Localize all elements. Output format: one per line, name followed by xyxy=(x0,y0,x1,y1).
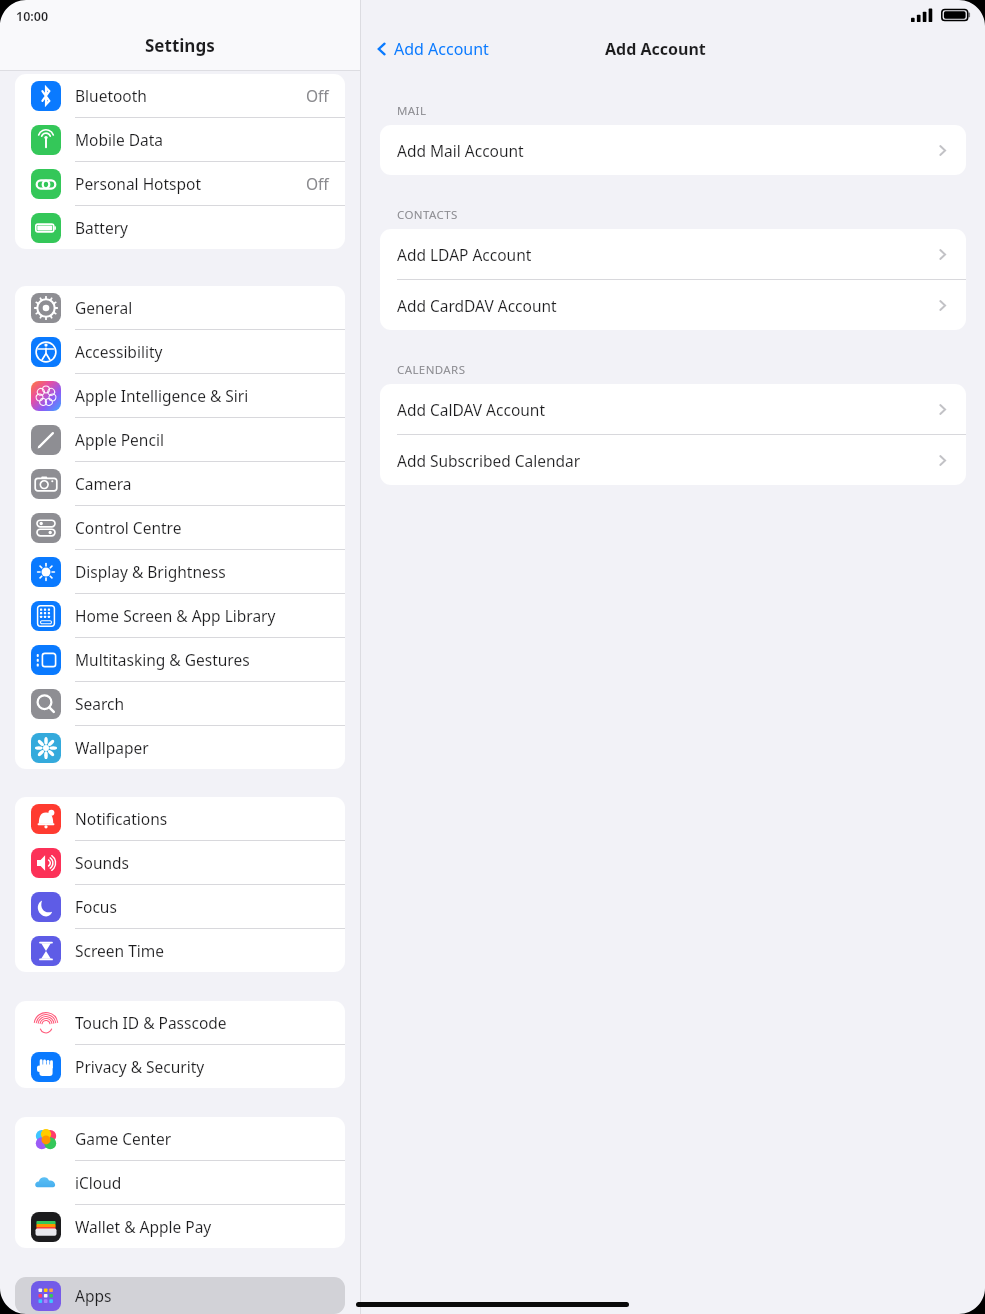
staticText: Camera xyxy=(75,473,132,494)
button[interactable]: Battery xyxy=(15,206,345,249)
button[interactable]: Bluetooth xyxy=(15,74,345,118)
button[interactable]: Add Subscribed Calendar xyxy=(380,435,966,485)
staticText: iCloud xyxy=(75,1172,122,1193)
staticText: MAIL xyxy=(397,103,427,119)
staticText: Search xyxy=(75,693,125,714)
button[interactable]: Focus xyxy=(15,885,345,929)
staticText: Off xyxy=(306,173,329,194)
button[interactable]: Apple Pencil xyxy=(15,418,345,462)
staticText: Apple Pencil xyxy=(75,429,164,450)
staticText: Screen Time xyxy=(75,940,164,961)
staticText: General xyxy=(75,297,133,318)
staticText: Focus xyxy=(75,896,117,917)
staticText: Battery xyxy=(75,217,129,238)
button[interactable]: Display & Brightness xyxy=(15,550,345,594)
staticText: Apps xyxy=(75,1285,112,1306)
staticText: Notifications xyxy=(75,808,168,829)
button[interactable]: Control Centre xyxy=(15,506,345,550)
button[interactable]: General xyxy=(15,286,345,330)
staticText: Personal Hotspot xyxy=(75,173,202,194)
staticText: Add Account xyxy=(394,38,489,60)
staticText: Home Screen & App Library xyxy=(75,605,276,626)
button[interactable]: Add CalDAV Account xyxy=(380,384,966,435)
staticText: Sounds xyxy=(75,852,130,873)
staticText: CONTACTS xyxy=(397,207,458,223)
staticText: 10:00 xyxy=(16,8,49,25)
button[interactable]: Wallpaper xyxy=(15,726,345,769)
staticText: Settings xyxy=(145,34,215,57)
staticText: Display & Brightness xyxy=(75,561,226,582)
staticText: Apple Intelligence & Siri xyxy=(75,385,249,406)
staticText: CALENDARS xyxy=(397,362,466,378)
staticText: Add Account xyxy=(605,38,706,60)
button[interactable]: Touch ID & Passcode xyxy=(15,1001,345,1045)
button[interactable]: Mobile Data xyxy=(15,118,345,162)
button[interactable]: Wallet & Apple Pay xyxy=(15,1205,345,1248)
button[interactable]: Add Mail Account xyxy=(380,125,966,175)
staticText: Add CalDAV Account xyxy=(397,399,546,420)
staticText: Off xyxy=(306,85,329,106)
button[interactable]: Add LDAP Account xyxy=(380,229,966,280)
button[interactable]: Multitasking & Gestures xyxy=(15,638,345,682)
staticText: Privacy & Security xyxy=(75,1056,205,1077)
staticText: Add Subscribed Calendar xyxy=(397,450,581,471)
staticText: Wallet & Apple Pay xyxy=(75,1216,212,1237)
staticText: Bluetooth xyxy=(75,85,147,106)
button[interactable]: Privacy & Security xyxy=(15,1045,345,1088)
staticText: Add CardDAV Account xyxy=(397,295,557,316)
staticText: Multitasking & Gestures xyxy=(75,649,250,670)
button[interactable]: Sounds xyxy=(15,841,345,885)
staticText: Wallpaper xyxy=(75,737,149,758)
button[interactable]: Search xyxy=(15,682,345,726)
button[interactable]: iCloud xyxy=(15,1161,345,1205)
button[interactable]: Apps xyxy=(15,1277,345,1314)
staticText: Touch ID & Passcode xyxy=(75,1012,227,1033)
staticText: Add Mail Account xyxy=(397,140,524,161)
button[interactable]: Apple Intelligence & Siri xyxy=(15,374,345,418)
button[interactable]: Home Screen & App Library xyxy=(15,594,345,638)
button[interactable]: Game Center xyxy=(15,1117,345,1161)
button[interactable]: Add Account xyxy=(374,38,489,60)
button[interactable]: Personal Hotspot xyxy=(15,162,345,206)
button[interactable]: Accessibility xyxy=(15,330,345,374)
staticText: Accessibility xyxy=(75,341,163,362)
button[interactable]: Add CardDAV Account xyxy=(380,280,966,330)
button[interactable]: Notifications xyxy=(15,797,345,841)
button[interactable]: Camera xyxy=(15,462,345,506)
button[interactable]: Screen Time xyxy=(15,929,345,972)
staticText: Game Center xyxy=(75,1128,172,1149)
staticText: Add LDAP Account xyxy=(397,244,532,265)
staticText: Control Centre xyxy=(75,517,182,538)
staticText: Mobile Data xyxy=(75,129,164,150)
